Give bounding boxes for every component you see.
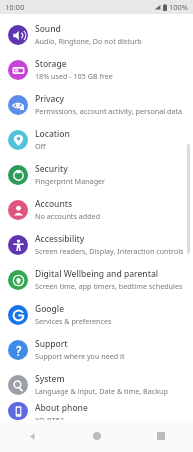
button[interactable]: Accessibility — [0, 227, 193, 262]
staticText: Accessibility — [35, 233, 85, 245]
staticText: Language & input, Date & time, Backup — [35, 386, 168, 396]
staticText: Permissions, account activity, personal … — [35, 106, 183, 116]
staticText: Digital Wellbeing and parental controls — [35, 268, 187, 280]
staticText: Fingerprint Manager — [35, 176, 106, 186]
button[interactable]: Back — [0, 420, 65, 452]
staticText: XQ-BT52 — [35, 415, 64, 420]
staticText: Audio, Ringtone, Do not disturb — [35, 36, 142, 46]
staticText: No accounts added — [35, 211, 101, 221]
staticText: Privacy — [35, 93, 65, 105]
staticText: Google — [35, 303, 65, 315]
staticText: Storage — [35, 58, 67, 70]
staticText: Off — [35, 141, 46, 151]
staticText: About phone — [35, 402, 88, 414]
staticText: Screen time, app timers, bedtime schedul… — [35, 281, 183, 291]
staticText: System — [35, 373, 65, 385]
staticText: Support — [35, 338, 68, 350]
staticText: Sound — [35, 23, 61, 35]
button[interactable]: Digital Wellbeing and parental controls — [0, 262, 193, 297]
staticText: 10:00 — [5, 2, 25, 12]
button[interactable]: Accounts — [0, 192, 193, 227]
staticText: Support where you need it — [35, 351, 125, 361]
button[interactable]: Support — [0, 332, 193, 367]
button[interactable]: Home — [65, 420, 129, 452]
button[interactable]: Security — [0, 157, 193, 192]
button[interactable]: Recent apps — [129, 420, 193, 452]
staticText: Services & preferences — [35, 316, 112, 326]
button[interactable]: Privacy — [0, 87, 193, 122]
staticText: 100% — [169, 2, 189, 12]
button[interactable]: Location — [0, 122, 193, 157]
button[interactable]: Storage — [0, 52, 193, 87]
staticText: Screen readers, Display, Interaction con… — [35, 246, 184, 256]
button[interactable]: Sound — [0, 17, 193, 52]
staticText: Location — [35, 128, 70, 140]
staticText: Accounts — [35, 198, 73, 210]
button[interactable]: About phone — [0, 402, 193, 420]
button[interactable]: System — [0, 367, 193, 402]
button[interactable]: Google — [0, 297, 193, 332]
staticText: Security — [35, 163, 68, 175]
staticText: 18% used - 105 GB free — [35, 71, 113, 81]
